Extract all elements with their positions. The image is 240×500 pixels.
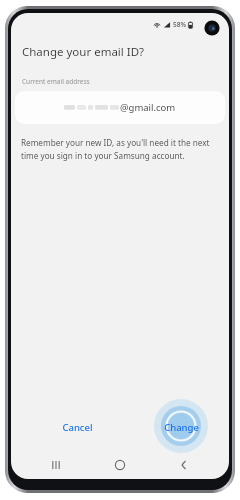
- staticText: Change: [164, 421, 199, 434]
- staticText: 58%: [173, 20, 186, 29]
- staticText: @gmail.com: [120, 101, 176, 114]
- button[interactable]: Recents: [43, 452, 69, 478]
- staticText: Current email address: [22, 77, 90, 86]
- staticText: Change your email ID?: [22, 44, 145, 60]
- button[interactable]: Home: [107, 452, 133, 478]
- button[interactable]: @gmail.com: [15, 91, 225, 124]
- staticText: Cancel: [62, 421, 93, 434]
- button[interactable]: Back: [171, 452, 197, 478]
- staticText: Remember your new ID, as you'll need it …: [21, 137, 219, 162]
- button[interactable]: Cancel: [51, 414, 103, 440]
- button[interactable]: Change: [155, 414, 207, 440]
